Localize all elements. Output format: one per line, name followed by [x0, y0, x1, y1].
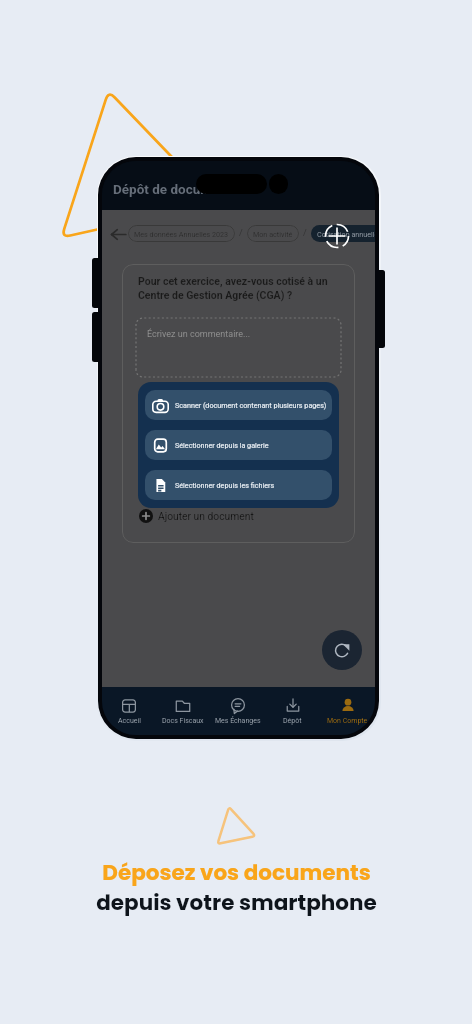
button[interactable]: Mes Échanges: [210, 687, 265, 735]
staticText: Cotisation annuelle: [317, 230, 375, 238]
button[interactable]: Docs Fiscaux: [156, 687, 210, 735]
staticText: Dépôt: [283, 717, 302, 725]
staticText: Sélectionner depuis les fichiers: [175, 481, 275, 489]
staticText: /: [303, 228, 307, 239]
button[interactable]: Rafraîchir: [322, 630, 362, 670]
button[interactable]: Cotisation annuelle: [311, 225, 375, 242]
staticText: depuis votre smartphone: [96, 887, 377, 917]
button[interactable]: Écrivez un commentaire...: [136, 318, 341, 377]
button[interactable]: Mon Compte: [320, 687, 375, 735]
button[interactable]: Retour: [110, 226, 126, 242]
staticText: Docs Fiscaux: [162, 717, 204, 725]
staticText: Mes Échanges: [215, 717, 261, 725]
button[interactable]: Sélectionner depuis les fichiers: [145, 470, 332, 500]
button[interactable]: Scanner (document contenant plusieurs pa…: [145, 390, 332, 420]
button[interactable]: Ajouter un document: [136, 506, 257, 526]
staticText: Mes données Annuelles 2023: [134, 230, 229, 238]
button[interactable]: Mon activité: [247, 225, 299, 242]
staticText: Ajouter un document: [158, 510, 254, 522]
button[interactable]: Accueil: [102, 687, 156, 735]
button[interactable]: Dépôt: [265, 687, 320, 735]
staticText: Mon activité: [253, 230, 293, 238]
staticText: Sélectionner depuis la galerie: [175, 441, 269, 449]
staticText: Déposez vos documents: [102, 857, 371, 887]
staticText: Accueil: [118, 717, 141, 725]
staticText: Écrivez un commentaire...: [147, 329, 251, 340]
staticText: Scanner (document contenant plusieurs pa…: [175, 401, 327, 409]
button[interactable]: Mes données Annuelles 2023: [128, 225, 235, 242]
staticText: /: [239, 228, 243, 239]
staticText: Pour cet exercice, avez-vous cotisé à un…: [138, 275, 328, 302]
button[interactable]: Sélectionner depuis la galerie: [145, 430, 332, 460]
staticText: Dépôt de documents: [113, 181, 239, 197]
staticText: Mon Compte: [327, 717, 368, 725]
